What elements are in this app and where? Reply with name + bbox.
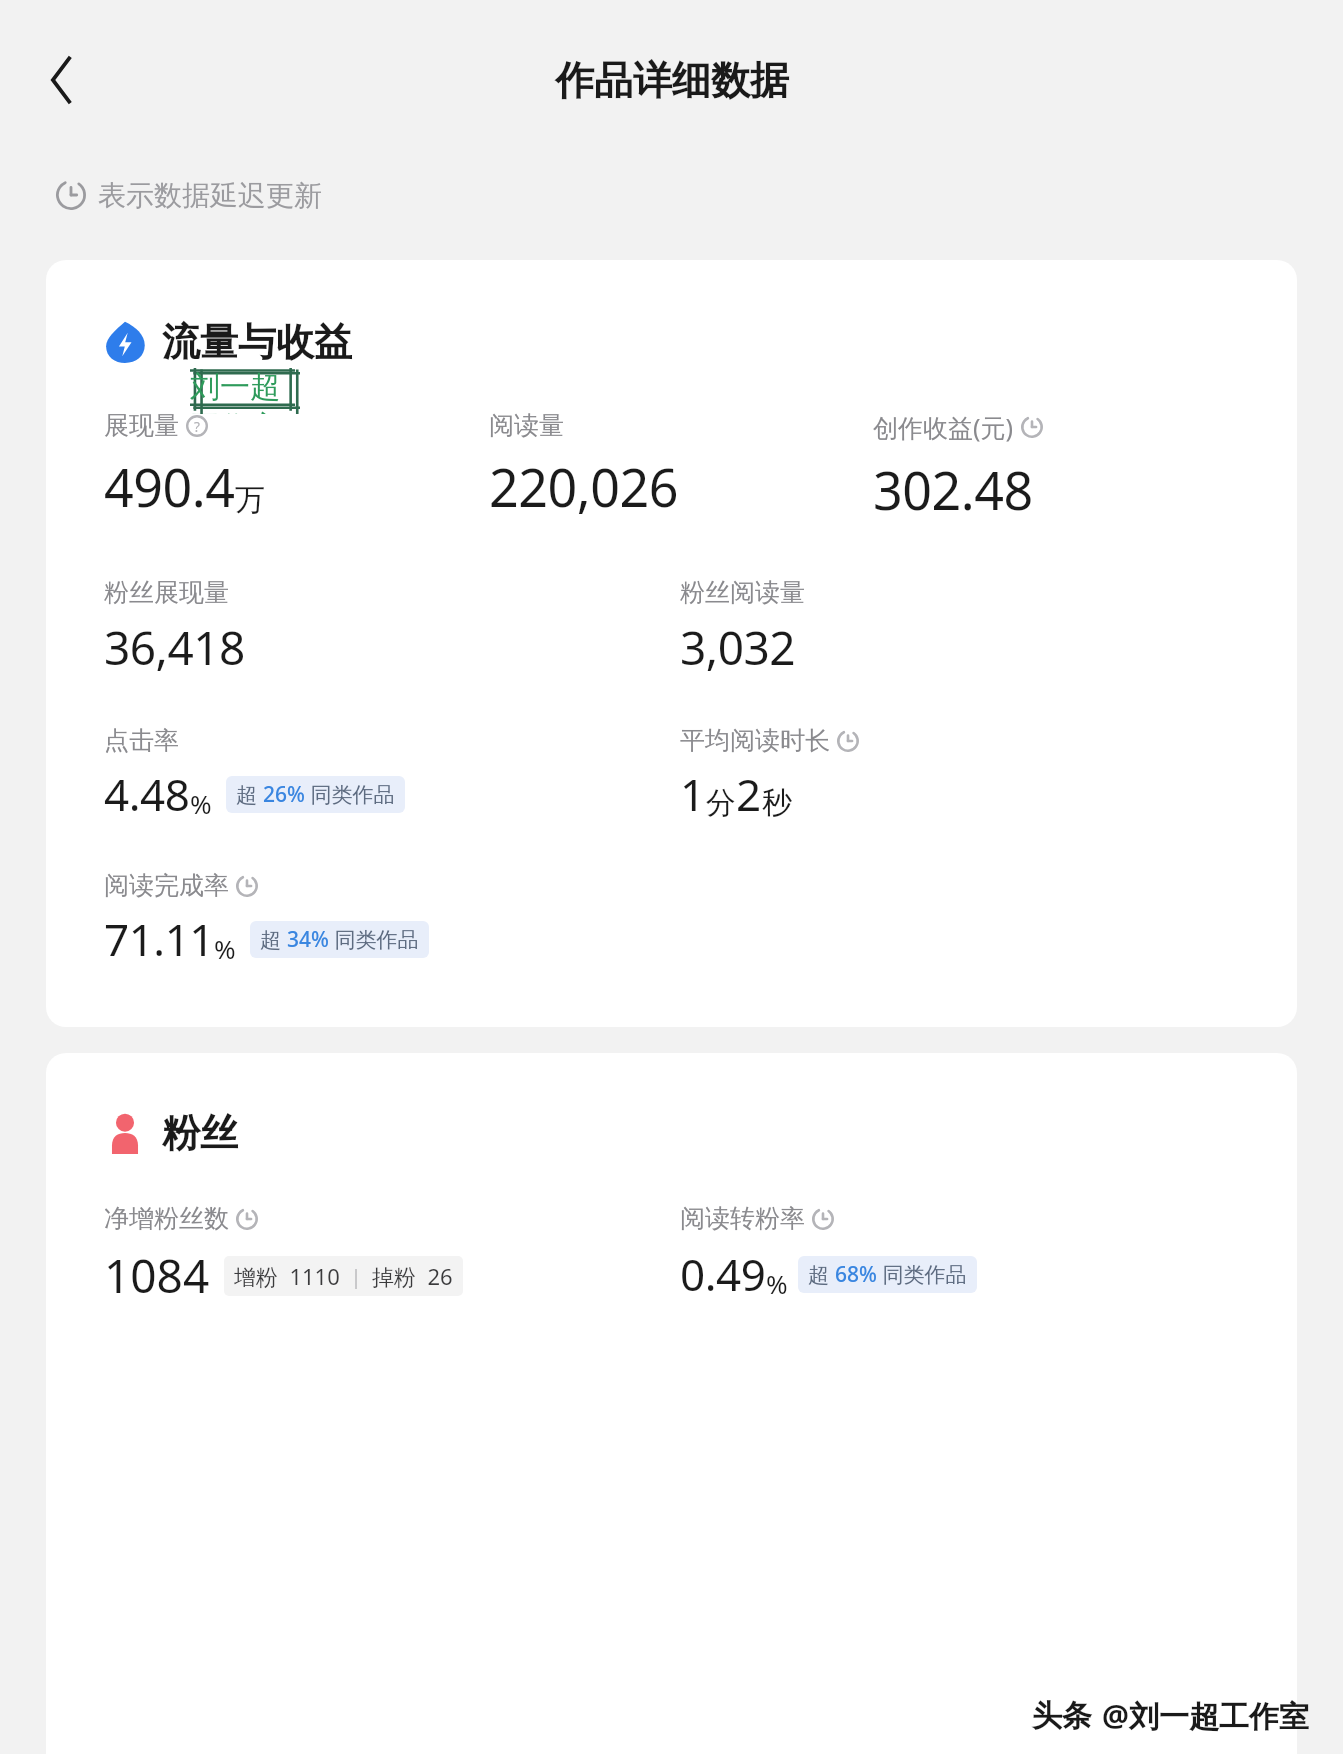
staticText: ? — [194, 417, 200, 436]
staticText: 阅读完成率 — [104, 870, 229, 901]
staticText: 2 — [736, 764, 762, 824]
staticText: 刘一超工作室 — [190, 368, 300, 414]
staticText: 36,418 — [104, 616, 245, 679]
staticText: 流量与收益 — [162, 318, 352, 366]
staticText: 净增粉丝数 — [104, 1203, 229, 1234]
staticText: 302.48 — [873, 454, 1033, 525]
staticText: 同类作品 — [329, 925, 419, 954]
button[interactable]: 粉丝 — [104, 1109, 238, 1157]
staticText: 创作收益(元) — [873, 410, 1014, 444]
staticText: 展现量 — [104, 410, 179, 441]
button[interactable]: 流量与收益 — [104, 318, 352, 366]
staticText: 0.49 — [680, 1244, 766, 1304]
staticText: 超 — [236, 780, 263, 809]
staticText: 掉粉 26 — [372, 1261, 453, 1291]
staticText: 表示数据延迟更新 — [98, 178, 322, 213]
staticText: @刘一超工作室 — [1102, 1695, 1309, 1736]
staticText: 粉丝 — [162, 1109, 238, 1157]
button[interactable]: Back — [30, 49, 92, 111]
staticText: 增粉 1110 — [234, 1261, 340, 1291]
staticText: 1084 — [104, 1244, 210, 1307]
staticText: 平均阅读时长 — [680, 725, 830, 756]
staticText: 粉丝阅读量 — [680, 577, 805, 608]
staticText: 万 — [235, 481, 265, 519]
staticText: 阅读量 — [489, 410, 564, 441]
staticText: % — [214, 931, 236, 966]
staticText: 3,032 — [680, 616, 796, 679]
staticText: 秒 — [762, 784, 792, 822]
staticText: 26% — [263, 780, 305, 809]
button[interactable]: 超 — [236, 780, 395, 809]
staticText: 同类作品 — [877, 1260, 967, 1289]
staticText: 点击率 — [104, 725, 179, 756]
staticText: 超 — [260, 925, 287, 954]
staticText: 同类作品 — [305, 780, 395, 809]
staticText: 分 — [706, 784, 736, 822]
staticText: | — [340, 1263, 372, 1290]
staticText: 超 — [808, 1260, 835, 1289]
staticText: 34% — [287, 925, 329, 954]
staticText: 粉丝展现量 — [104, 577, 229, 608]
staticText: 490.4 — [104, 451, 235, 522]
button[interactable]: 超 — [808, 1260, 967, 1289]
staticText: % — [190, 786, 212, 821]
button[interactable]: 增粉 1110 — [234, 1261, 453, 1291]
staticText: % — [766, 1266, 788, 1301]
staticText: 1 — [680, 764, 706, 824]
staticText: 头条 — [1032, 1697, 1092, 1735]
staticText: 作品详细数据 — [555, 56, 789, 105]
staticText: 阅读转粉率 — [680, 1203, 805, 1234]
staticText: 68% — [835, 1260, 877, 1289]
staticText: 4.48 — [104, 764, 190, 824]
staticText: 220,026 — [489, 451, 678, 522]
button[interactable]: 超 — [260, 925, 419, 954]
staticText: 71.11 — [104, 909, 214, 969]
